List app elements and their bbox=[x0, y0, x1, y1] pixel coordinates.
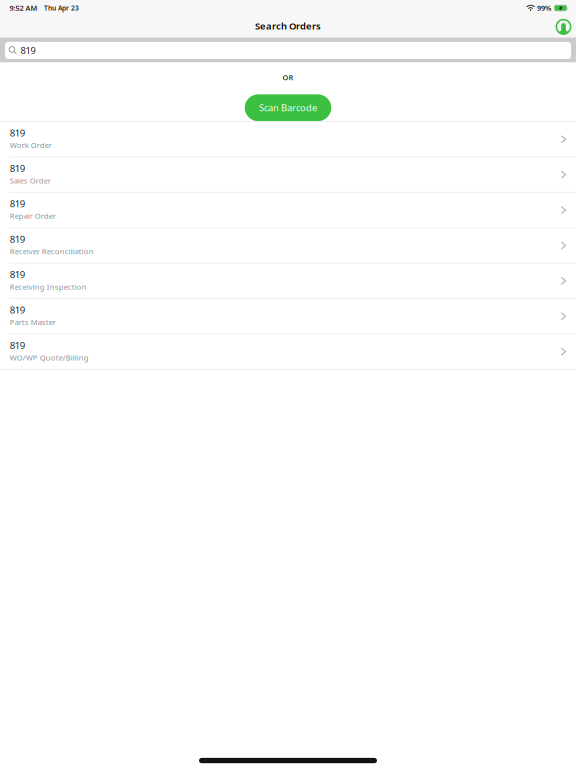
staticText: Repair Order bbox=[10, 211, 56, 221]
staticText: Receiver Reconciliation bbox=[10, 246, 94, 256]
staticText: Scan Barcode bbox=[259, 101, 317, 114]
button[interactable]: Scan Barcode bbox=[245, 94, 331, 121]
button[interactable]: 819 bbox=[0, 299, 576, 334]
staticText: 819 bbox=[10, 232, 25, 245]
staticText: Work Order bbox=[10, 140, 52, 150]
button[interactable]: 819 bbox=[0, 228, 576, 264]
staticText: Search Orders bbox=[255, 19, 321, 32]
staticText: WO/WP Quote/Billing bbox=[10, 352, 89, 363]
button[interactable]: 819 bbox=[0, 157, 576, 193]
staticText: 819 bbox=[20, 44, 35, 57]
staticText: 819 bbox=[10, 268, 25, 281]
staticText: Sales Order bbox=[10, 175, 51, 186]
staticText: 819 bbox=[10, 339, 25, 352]
staticText: Thu Apr 23 bbox=[44, 3, 79, 13]
staticText: 9:52 AM bbox=[9, 3, 37, 13]
staticText: 819 bbox=[10, 126, 25, 139]
staticText: 819 bbox=[10, 162, 25, 175]
staticText: 99% bbox=[537, 3, 551, 13]
staticText: Parts Master bbox=[10, 317, 56, 327]
staticText: 819 bbox=[10, 303, 25, 316]
button[interactable]: 819 bbox=[0, 334, 576, 370]
staticText: 819 bbox=[10, 197, 25, 210]
button[interactable]: 819 bbox=[0, 264, 576, 299]
button[interactable]: 819 bbox=[0, 193, 576, 228]
button[interactable]: 819 bbox=[0, 122, 576, 157]
staticText: OR bbox=[282, 72, 293, 82]
staticText: Receiving Inspection bbox=[10, 281, 87, 292]
button[interactable]: 819 bbox=[5, 42, 571, 59]
button[interactable]: Account bbox=[549, 16, 576, 37]
